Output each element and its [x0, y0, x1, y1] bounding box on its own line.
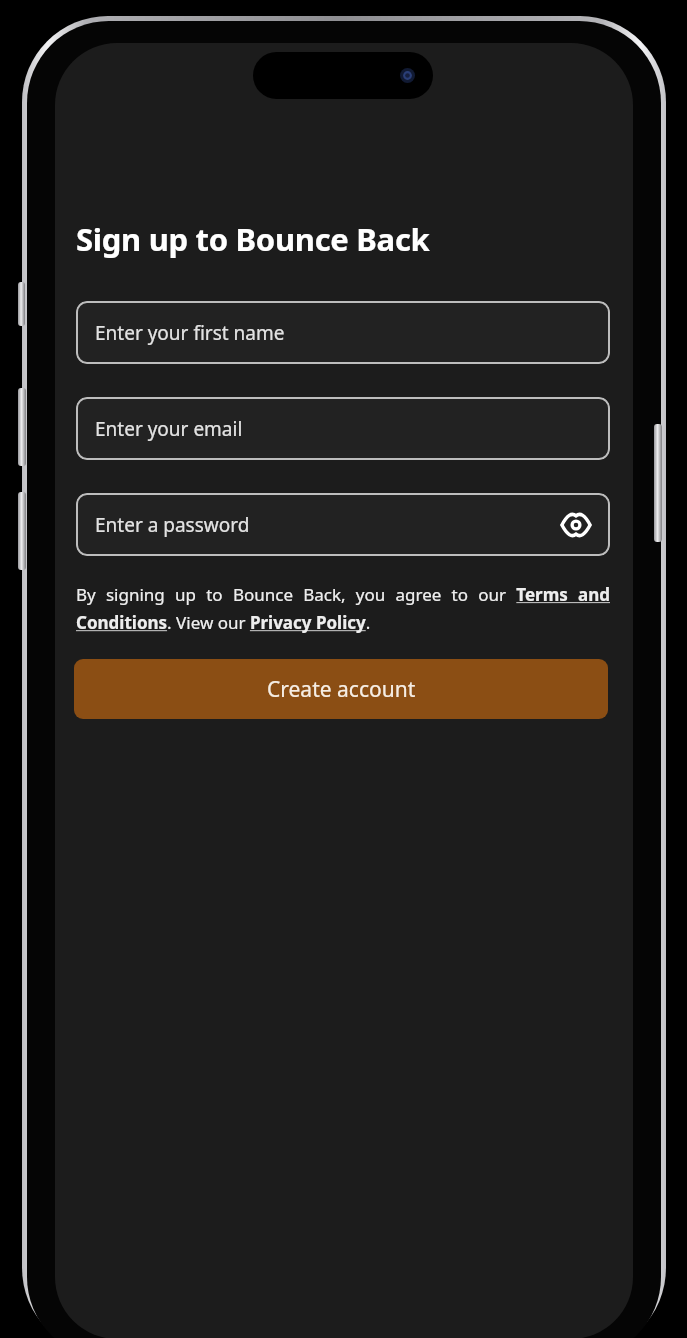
- staticText: Enter a password: [95, 512, 559, 538]
- button[interactable]: Enter your first name: [76, 301, 610, 364]
- staticText: Sign up to Bounce Back: [76, 218, 430, 260]
- staticText: Create account: [267, 675, 416, 704]
- button[interactable]: Enter your email: [76, 397, 610, 460]
- button[interactable]: Create account: [74, 659, 608, 719]
- staticText: Enter your email: [95, 416, 593, 442]
- button[interactable]: By signing up to Bounce Back, you agree …: [76, 583, 610, 634]
- button[interactable]: Show password: [559, 508, 593, 542]
- staticText: By signing up to Bounce Back, you agree …: [76, 583, 610, 634]
- staticText: Enter your first name: [95, 320, 593, 346]
- button[interactable]: Enter a password: [76, 493, 610, 556]
